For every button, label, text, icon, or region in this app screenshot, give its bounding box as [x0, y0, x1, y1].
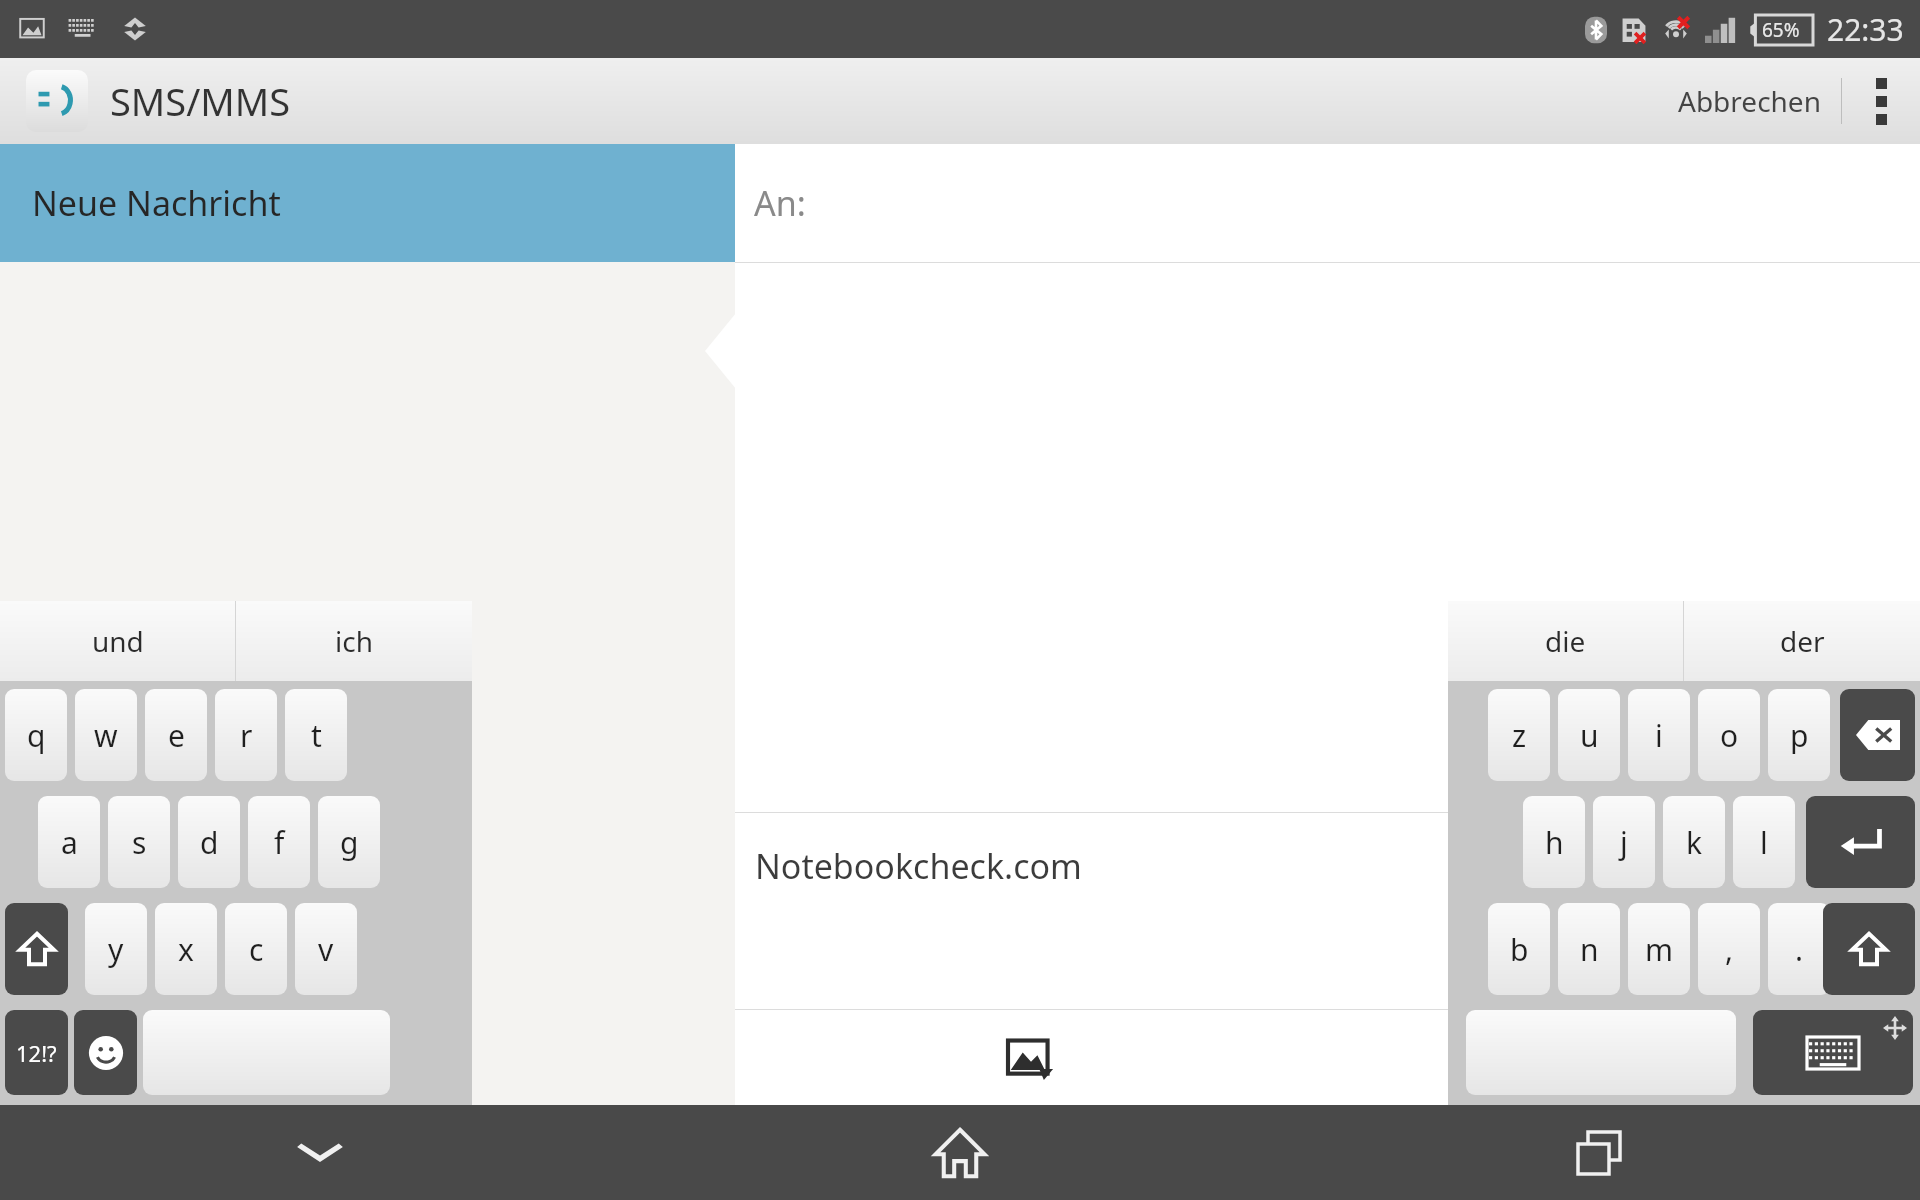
button[interactable]: Attach image	[735, 1010, 1327, 1105]
staticText: g	[340, 822, 359, 863]
staticText: Abbrechen	[1678, 82, 1821, 120]
button[interactable]: der	[1684, 601, 1920, 681]
button[interactable]: j	[1593, 796, 1655, 888]
button[interactable]: App icon	[26, 70, 88, 132]
staticText: w	[94, 715, 118, 756]
staticText: d	[200, 822, 219, 863]
staticText: Notebookcheck.com	[755, 843, 1082, 889]
button[interactable]: ,	[1698, 903, 1760, 995]
button[interactable]: f	[248, 796, 310, 888]
staticText: m	[1645, 929, 1674, 970]
button[interactable]: Key	[1806, 796, 1915, 888]
staticText: q	[27, 715, 46, 756]
button[interactable]: c	[225, 903, 287, 995]
button[interactable]: g	[318, 796, 380, 888]
staticText: und	[92, 622, 144, 660]
button[interactable]: w	[75, 689, 137, 781]
button[interactable]: t	[285, 689, 347, 781]
button[interactable]: More options	[1842, 58, 1920, 144]
button[interactable]: b	[1488, 903, 1550, 995]
staticText: z	[1512, 715, 1527, 756]
staticText: 65%	[1762, 17, 1800, 43]
button[interactable]: Home	[640, 1105, 1280, 1200]
staticText: e	[168, 715, 185, 756]
button[interactable]: und	[0, 601, 235, 681]
staticText: y	[108, 929, 124, 970]
staticText: h	[1545, 822, 1564, 863]
button[interactable]: s	[108, 796, 170, 888]
staticText: 22:33	[1827, 9, 1904, 50]
button[interactable]: z	[1488, 689, 1550, 781]
button[interactable]: e	[145, 689, 207, 781]
button[interactable]: Abbrechen	[1658, 64, 1841, 138]
button[interactable]: Neue Nachricht	[0, 144, 735, 262]
button[interactable]: Hide keyboard	[0, 1105, 640, 1200]
staticText: f	[274, 822, 285, 863]
button[interactable]: a	[38, 796, 100, 888]
staticText: a	[61, 822, 78, 863]
button[interactable]: r	[215, 689, 277, 781]
staticText: j	[1620, 822, 1628, 863]
button[interactable]: p	[1768, 689, 1830, 781]
button[interactable]: Key	[1840, 689, 1915, 781]
staticText: ich	[335, 622, 373, 660]
button[interactable]: Key	[5, 903, 68, 995]
button[interactable]: Key	[1823, 903, 1915, 995]
button[interactable]: h	[1523, 796, 1585, 888]
staticText: An:	[754, 180, 806, 226]
staticText: u	[1580, 715, 1599, 756]
staticText: b	[1510, 929, 1529, 970]
button[interactable]: .	[1768, 903, 1830, 995]
button[interactable]	[1466, 1010, 1736, 1095]
staticText: die	[1545, 622, 1586, 660]
staticText: r	[240, 715, 253, 756]
button[interactable]: m	[1628, 903, 1690, 995]
button[interactable]: Notebookcheck.com	[735, 813, 1920, 1009]
staticText: t	[311, 715, 322, 756]
staticText: v	[318, 929, 334, 970]
staticText: .	[1795, 929, 1804, 970]
button[interactable]: k	[1663, 796, 1725, 888]
button[interactable]: x	[155, 903, 217, 995]
button[interactable]: y	[85, 903, 147, 995]
button[interactable]: An:	[735, 144, 1920, 262]
button[interactable]: u	[1558, 689, 1620, 781]
staticText: der	[1780, 622, 1825, 660]
button[interactable]: l	[1733, 796, 1795, 888]
staticText: l	[1760, 822, 1768, 863]
button[interactable]: v	[295, 903, 357, 995]
staticText: o	[1720, 715, 1739, 756]
button[interactable]: i	[1628, 689, 1690, 781]
button[interactable]	[143, 1010, 390, 1095]
staticText: p	[1790, 715, 1809, 756]
button[interactable]: o	[1698, 689, 1760, 781]
staticText: 12!?	[16, 1038, 57, 1068]
staticText: c	[249, 929, 264, 970]
staticText: Neue Nachricht	[32, 180, 281, 226]
button[interactable]: n	[1558, 903, 1620, 995]
button[interactable]: d	[178, 796, 240, 888]
staticText: k	[1686, 822, 1703, 863]
button[interactable]: ich	[236, 601, 472, 681]
staticText: s	[132, 822, 147, 863]
button[interactable]: Key	[1753, 1010, 1913, 1095]
button[interactable]: die	[1448, 601, 1683, 681]
button[interactable]: Recent apps	[1280, 1105, 1920, 1200]
staticText: n	[1580, 929, 1599, 970]
button[interactable]: q	[5, 689, 67, 781]
staticText: ,	[1725, 929, 1734, 970]
staticText: x	[178, 929, 194, 970]
button[interactable]: Key	[74, 1010, 137, 1095]
button[interactable]: Key	[5, 1010, 68, 1095]
button[interactable]: Take photo	[1327, 1010, 1920, 1105]
staticText: i	[1655, 715, 1663, 756]
staticText: SMS/MMS	[110, 75, 291, 127]
